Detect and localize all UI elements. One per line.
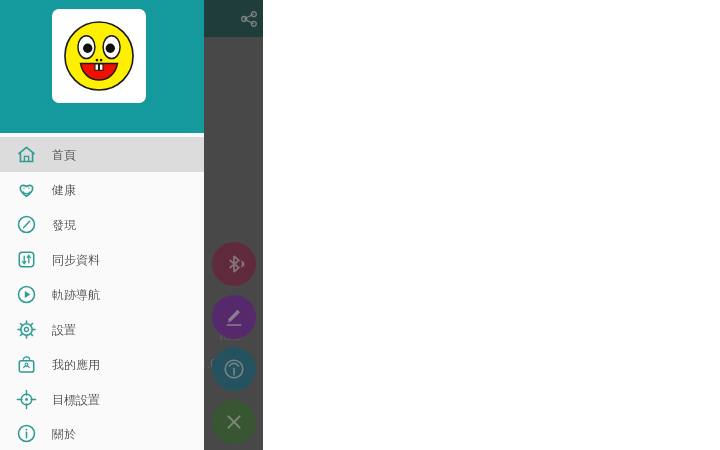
- staticText: 發現: [52, 217, 76, 232]
- staticText: 1.0: [200, 355, 217, 371]
- button[interactable]: GPS: [212, 347, 256, 391]
- staticText: 關於: [52, 426, 76, 441]
- button[interactable]: 健康: [0, 172, 204, 207]
- button[interactable]: Share: [236, 6, 262, 32]
- staticText: 首頁: [52, 147, 76, 162]
- button[interactable]: 首頁: [0, 137, 204, 172]
- button[interactable]: Edit: [212, 295, 256, 339]
- button[interactable]: [0, 0, 204, 133]
- button[interactable]: 關於: [0, 417, 204, 450]
- button[interactable]: 軌跡導航: [0, 277, 204, 312]
- staticText: 距離: [219, 328, 241, 342]
- button[interactable]: 同步資料: [0, 242, 204, 277]
- button[interactable]: Close: [212, 400, 256, 444]
- staticText: 軌跡導航: [52, 287, 100, 302]
- staticText: 同步資料: [52, 252, 100, 267]
- staticText: 健康: [52, 182, 76, 197]
- button[interactable]: 發現: [0, 207, 204, 242]
- staticText: 目標設置: [52, 392, 100, 407]
- button[interactable]: Bluetooth off: [212, 242, 256, 286]
- staticText: 設置: [52, 322, 76, 337]
- button[interactable]: 我的應用: [0, 347, 204, 382]
- button[interactable]: 設置: [0, 312, 204, 347]
- button[interactable]: 目標設置: [0, 382, 204, 417]
- staticText: 我的應用: [52, 357, 100, 372]
